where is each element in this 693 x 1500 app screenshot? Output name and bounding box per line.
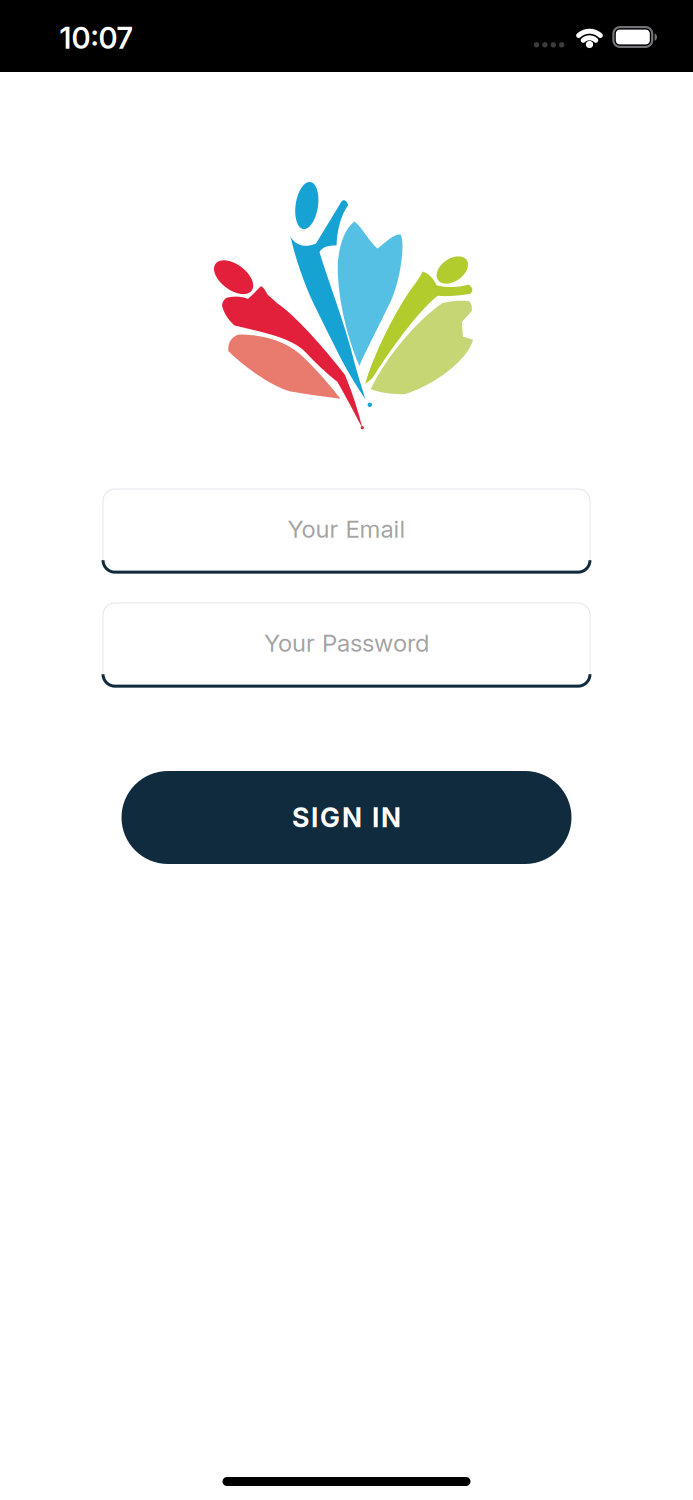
- button[interactable]: Your Email: [103, 489, 590, 571]
- staticText: Your Password: [264, 628, 429, 657]
- button[interactable]: SIGN IN: [121, 771, 571, 864]
- button[interactable]: Your Password: [103, 603, 590, 685]
- staticText: Your Email: [287, 514, 405, 543]
- staticText: SIGN IN: [292, 801, 401, 834]
- staticText: 10:07: [59, 20, 132, 56]
